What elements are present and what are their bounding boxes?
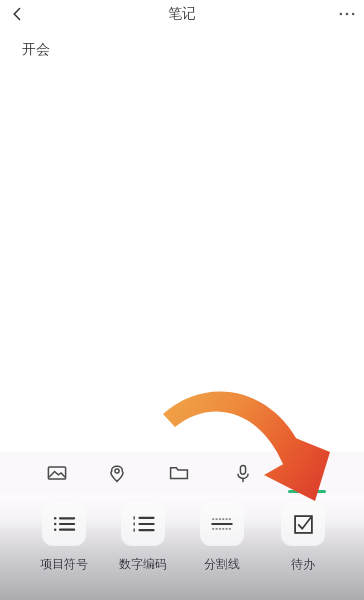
staticText: 分割线 — [204, 556, 240, 571]
button[interactable]: 数字编码 — [105, 502, 181, 571]
button[interactable]: Insert image — [38, 454, 76, 492]
button[interactable]: 分割线 — [184, 502, 260, 571]
staticText: 笔记 — [168, 5, 196, 23]
staticText: 待办 — [291, 556, 315, 571]
button[interactable]: 项目符号 — [26, 502, 102, 571]
button[interactable]: Back — [0, 0, 34, 27]
staticText: 项目符号 — [40, 556, 88, 571]
button[interactable]: List format — [286, 454, 324, 492]
button[interactable]: Voice input — [224, 454, 262, 492]
button[interactable]: Insert location — [98, 454, 136, 492]
staticText: 数字编码 — [119, 556, 167, 571]
button[interactable]: 待办 — [265, 502, 341, 571]
button[interactable]: More options — [330, 0, 364, 27]
button[interactable]: Folder — [160, 454, 198, 492]
staticText: 开会 — [22, 41, 50, 59]
